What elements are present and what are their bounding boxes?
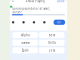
button[interactable]: Back bbox=[12, 0, 14, 2]
button[interactable]: Beta bbox=[39, 32, 64, 38]
staticText: Epsln bbox=[22, 49, 29, 52]
staticText: Now Playing bbox=[28, 0, 45, 3]
button[interactable]: Previous bbox=[22, 21, 25, 23]
staticText: Beta bbox=[49, 33, 55, 37]
button[interactable]: Play bbox=[33, 21, 35, 23]
staticText: Zeta bbox=[49, 49, 55, 52]
button[interactable]: Next bbox=[43, 21, 46, 23]
button[interactable]: Gamma bbox=[12, 40, 38, 46]
staticText: Delta bbox=[48, 41, 55, 44]
button[interactable]: Zeta bbox=[39, 47, 64, 53]
staticText: Done bbox=[57, 0, 65, 3]
button[interactable]: Done bbox=[57, 0, 65, 3]
button[interactable]: Alpha bbox=[12, 32, 38, 38]
button[interactable]: Go bbox=[54, 20, 65, 25]
staticText: Alpha bbox=[21, 33, 29, 37]
button[interactable]: Delta bbox=[39, 40, 64, 46]
staticText: Go bbox=[57, 20, 61, 24]
button[interactable]: Epsln bbox=[12, 47, 38, 53]
staticText: Gamma bbox=[21, 41, 29, 44]
button[interactable]: Rewind bbox=[12, 21, 14, 23]
staticText: Lorem ipsum dolor sit amet, consec bbox=[12, 7, 50, 14]
